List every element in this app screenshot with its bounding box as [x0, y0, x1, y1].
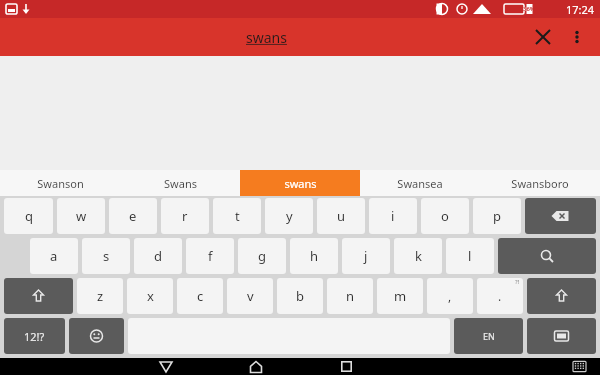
staticText: k [415, 247, 422, 265]
button[interactable]: g [238, 238, 286, 274]
button[interactable]: t [213, 198, 261, 234]
staticText: 17:24 [566, 2, 595, 17]
button[interactable]: Shift [4, 278, 73, 314]
staticText: s [103, 247, 110, 265]
button[interactable]: n [327, 278, 373, 314]
staticText: c [197, 287, 204, 305]
staticText: Swansboro [511, 176, 569, 191]
button[interactable]: w [57, 198, 105, 234]
staticText: r [182, 207, 188, 225]
button[interactable]: c [177, 278, 223, 314]
staticText: ?! [515, 278, 520, 286]
button[interactable]: v [227, 278, 273, 314]
button[interactable]: i [369, 198, 417, 234]
staticText: . [498, 288, 502, 304]
button[interactable]: y [265, 198, 313, 234]
staticText: b [296, 287, 304, 305]
button[interactable]: Change keyboard [527, 318, 596, 354]
button[interactable]: k [394, 238, 442, 274]
button[interactable]: u [317, 198, 365, 234]
staticText: q [25, 207, 33, 225]
button[interactable]: l [446, 238, 494, 274]
staticText: swans [246, 28, 287, 47]
staticText: f [208, 247, 213, 265]
button[interactable]: p [473, 198, 521, 234]
button[interactable]: swans [240, 170, 360, 196]
button[interactable]: Swansea [360, 170, 480, 196]
staticText: u [337, 207, 346, 225]
button[interactable]: s [82, 238, 130, 274]
button[interactable]: b [277, 278, 323, 314]
staticText: x [147, 287, 154, 305]
button[interactable]: Swans [120, 170, 240, 196]
staticText: v [247, 287, 254, 305]
button[interactable]: , [427, 278, 473, 314]
staticText: e [129, 207, 137, 225]
staticText: n [346, 287, 355, 305]
staticText: 36% [523, 5, 536, 13]
button[interactable]: Home [211, 358, 301, 375]
button[interactable]: swans [8, 18, 524, 56]
button[interactable]: d [134, 238, 182, 274]
button[interactable]: q [4, 198, 53, 234]
staticText: t [235, 207, 240, 225]
button[interactable]: o [421, 198, 469, 234]
button[interactable]: x [127, 278, 173, 314]
staticText: Swansea [397, 176, 443, 191]
staticText: z [97, 287, 104, 305]
staticText: g [258, 247, 266, 265]
staticText: 12!? [24, 329, 45, 344]
staticText: d [154, 247, 162, 265]
button[interactable]: f [186, 238, 234, 274]
button[interactable]: m [377, 278, 423, 314]
button[interactable]: Swansboro [480, 170, 600, 196]
button[interactable]: Recent apps [301, 358, 391, 375]
button[interactable]: h [290, 238, 338, 274]
staticText: l [468, 247, 472, 265]
staticText: w [76, 207, 87, 225]
staticText: Swanson [37, 176, 84, 191]
button[interactable]: j [342, 238, 390, 274]
staticText: i [391, 207, 395, 225]
button[interactable]: Back [121, 358, 211, 375]
button[interactable]: Backspace [525, 198, 596, 234]
staticText: j [364, 247, 368, 265]
staticText: swans [284, 176, 317, 191]
staticText: o [441, 207, 449, 225]
staticText: a [50, 247, 58, 265]
button[interactable]: EN [454, 318, 523, 354]
button[interactable]: Swanson [0, 170, 120, 196]
button[interactable]: Search [498, 238, 596, 274]
staticText: m [394, 287, 407, 305]
button[interactable]: Clear search [524, 18, 562, 56]
button[interactable]: r [161, 198, 209, 234]
button[interactable]: 12!? [4, 318, 65, 354]
staticText: EN [483, 330, 495, 342]
staticText: y [286, 207, 293, 225]
staticText: h [310, 247, 319, 265]
button[interactable]: More options [562, 22, 592, 52]
button[interactable]: Emoji [69, 318, 124, 354]
staticText: Swans [164, 176, 197, 191]
button[interactable]: z [77, 278, 123, 314]
button[interactable]: e [109, 198, 157, 234]
button[interactable]: Shift [527, 278, 596, 314]
staticText: p [493, 207, 501, 225]
button[interactable]: Hide keyboard [562, 358, 596, 375]
button[interactable]: . [477, 278, 523, 314]
staticText: , [448, 288, 452, 304]
button[interactable]: a [30, 238, 78, 274]
